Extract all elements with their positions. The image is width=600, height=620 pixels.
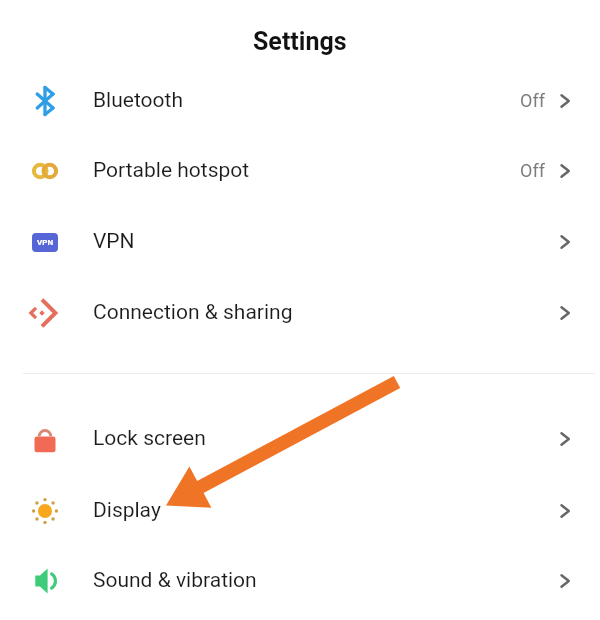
staticText: VPN xyxy=(93,229,135,254)
staticText: Off xyxy=(520,90,545,111)
staticText: Settings xyxy=(253,27,347,56)
staticText: Portable hotspot xyxy=(93,158,250,183)
staticText: VPN xyxy=(37,238,54,247)
button[interactable]: Sound & vibration xyxy=(0,545,600,616)
button[interactable]: Connection & sharing xyxy=(0,277,600,348)
button[interactable]: Bluetooth xyxy=(0,65,600,136)
button[interactable]: Lock screen xyxy=(0,403,600,474)
button[interactable]: VPN xyxy=(0,206,600,277)
button[interactable]: Portable hotspot xyxy=(0,135,600,206)
staticText: Display xyxy=(93,498,161,523)
staticText: Off xyxy=(520,160,545,181)
staticText: Connection & sharing xyxy=(93,300,293,325)
staticText: Bluetooth xyxy=(93,88,183,113)
staticText: Lock screen xyxy=(93,426,206,451)
staticText: Sound & vibration xyxy=(93,568,257,593)
button[interactable]: Display xyxy=(0,475,600,546)
